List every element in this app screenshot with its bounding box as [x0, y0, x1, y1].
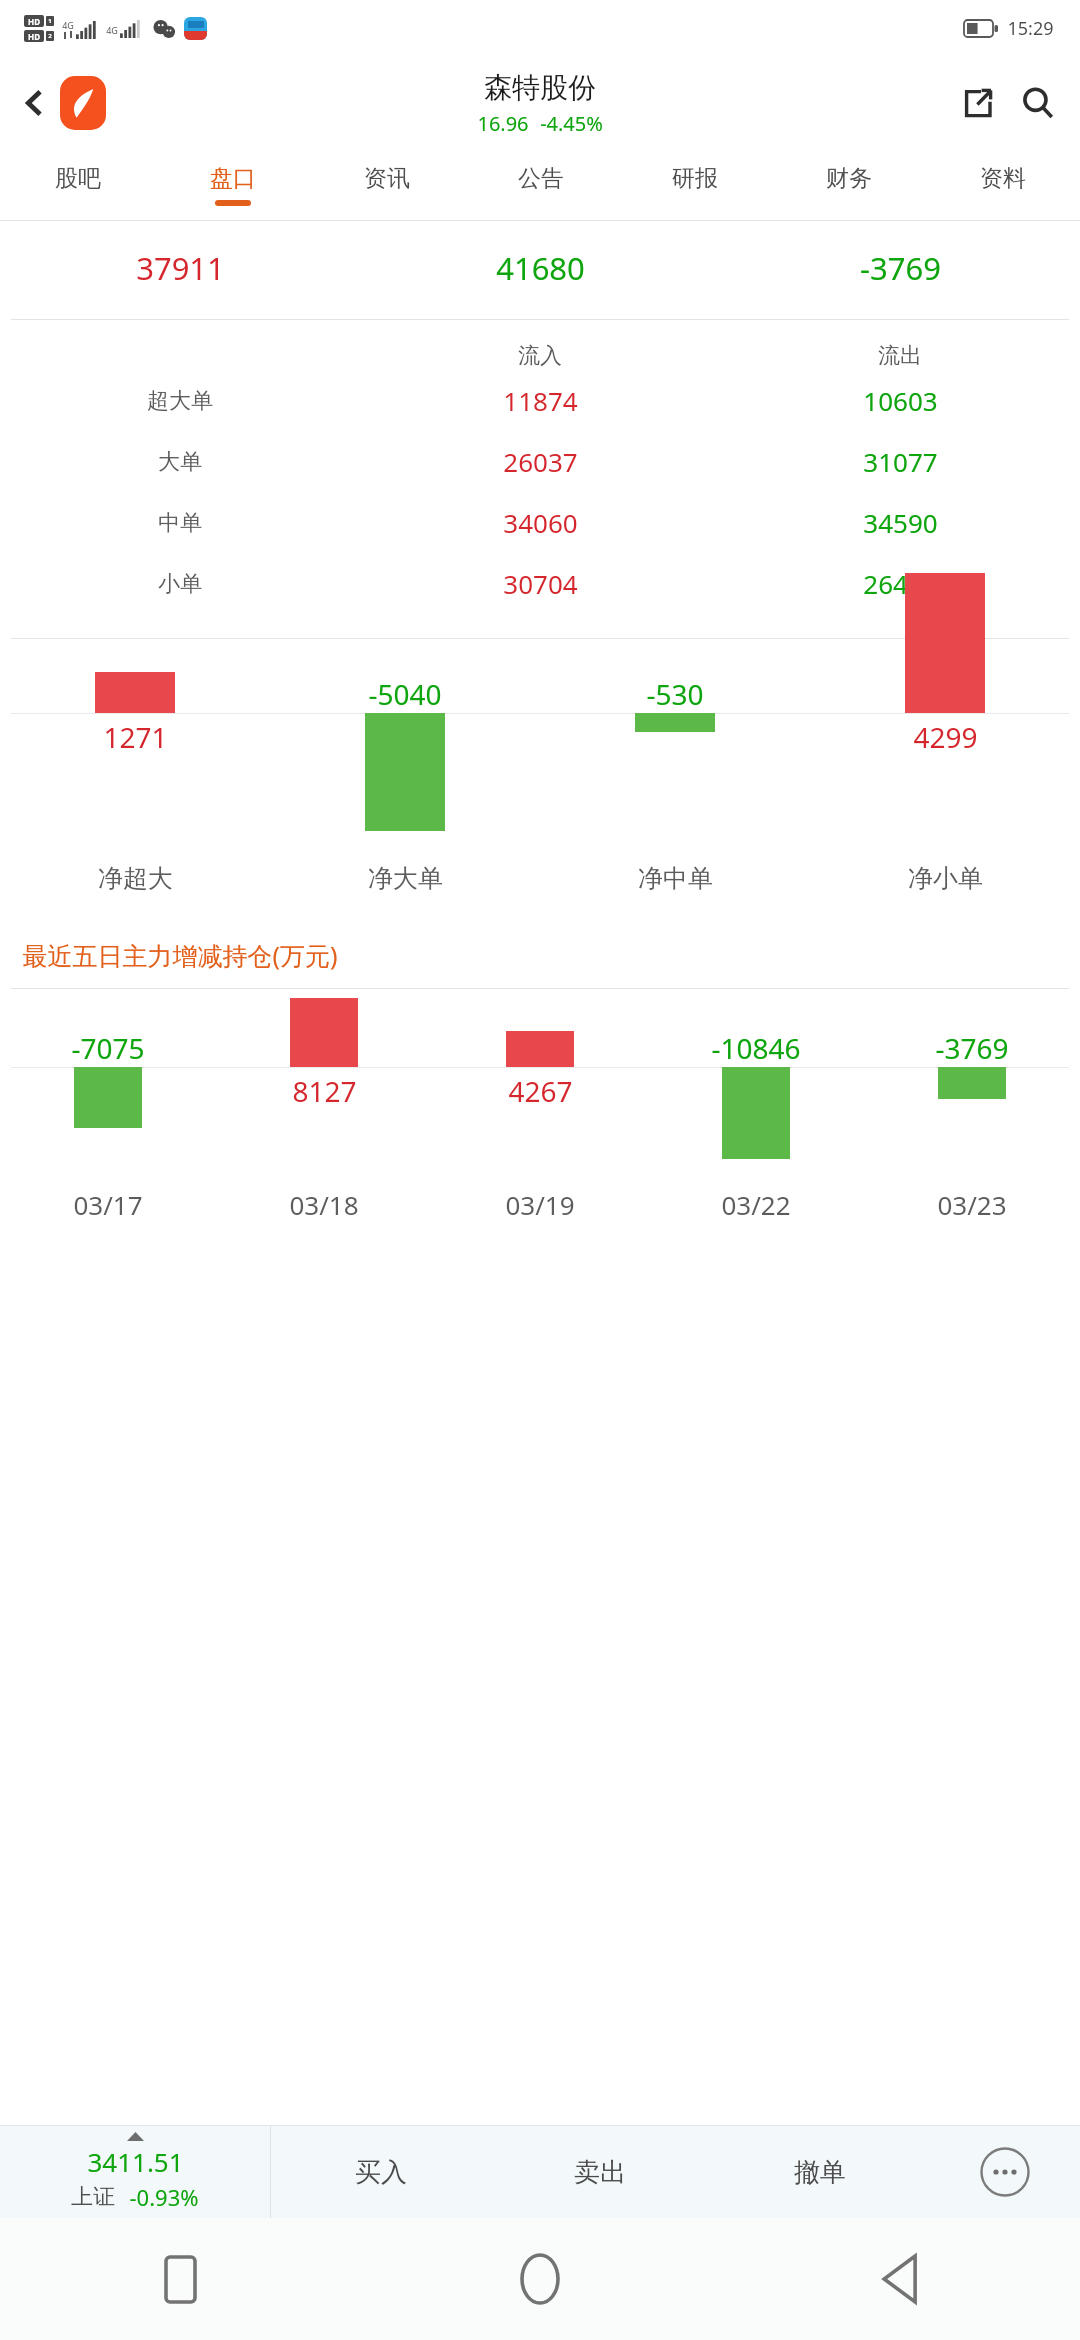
- staticText: 大单: [158, 448, 202, 476]
- staticText: HD: [28, 31, 40, 42]
- button[interactable]: App logo: [60, 76, 106, 130]
- button[interactable]: 3411.51: [0, 2126, 270, 2218]
- button[interactable]: 4267: [432, 1009, 648, 1171]
- button[interactable]: 中单: [0, 492, 1080, 553]
- staticText: 中单: [158, 509, 202, 537]
- staticText: 03/18: [289, 1187, 359, 1222]
- staticText: 净小单: [908, 863, 983, 894]
- staticText: 41680: [496, 247, 585, 289]
- button[interactable]: -7075: [0, 1009, 216, 1171]
- staticText: 34060: [503, 505, 578, 540]
- staticText: 34590: [863, 505, 938, 540]
- button[interactable]: -5040: [270, 653, 540, 841]
- staticText: 盘口: [210, 164, 256, 193]
- staticText: 股吧: [55, 164, 101, 193]
- button[interactable]: 4299: [810, 653, 1080, 841]
- button[interactable]: 8127: [216, 1009, 432, 1171]
- staticText: 4G: [62, 19, 74, 31]
- button[interactable]: 超大单: [0, 370, 1080, 431]
- staticText: 公告: [518, 164, 564, 193]
- staticText: 森特股份: [484, 70, 596, 105]
- staticText: 26037: [503, 444, 578, 479]
- staticText: HD: [28, 16, 40, 27]
- button[interactable]: 资料: [926, 150, 1080, 220]
- staticText: 撤单: [794, 2156, 846, 2189]
- button[interactable]: 研报: [618, 150, 772, 220]
- staticText: 小单: [158, 570, 202, 598]
- staticText: -4.45%: [540, 110, 603, 137]
- staticText: -3769: [935, 1029, 1009, 1067]
- button[interactable]: -530: [540, 653, 810, 841]
- button[interactable]: Back: [10, 72, 60, 134]
- staticText: 2: [48, 32, 52, 40]
- button[interactable]: Search: [1008, 73, 1068, 133]
- button[interactable]: More options: [930, 2126, 1080, 2218]
- staticText: 1271: [103, 718, 168, 756]
- staticText: 买入: [355, 2156, 407, 2189]
- staticText: 财务: [826, 164, 872, 193]
- staticText: 净中单: [638, 863, 713, 894]
- staticText: 31077: [863, 444, 938, 479]
- button[interactable]: 大单: [0, 431, 1080, 492]
- staticText: 4299: [913, 718, 978, 756]
- staticText: 最近五日主力增减持仓(万元): [22, 938, 338, 972]
- button[interactable]: Back: [720, 2218, 1080, 2340]
- staticText: 1: [48, 17, 52, 25]
- staticText: 资料: [980, 164, 1026, 193]
- staticText: 研报: [672, 164, 718, 193]
- button[interactable]: 股吧: [0, 150, 155, 220]
- staticText: 15:29: [1007, 16, 1054, 41]
- button[interactable]: 买入: [271, 2126, 490, 2218]
- staticText: 4G: [106, 24, 118, 36]
- staticText: 超大单: [147, 387, 213, 415]
- button[interactable]: 撤单: [710, 2126, 930, 2218]
- staticText: 3411.51: [87, 2144, 184, 2179]
- staticText: 8127: [292, 1072, 357, 1110]
- staticText: 37911: [136, 247, 225, 289]
- staticText: 卖出: [574, 2156, 626, 2189]
- button[interactable]: 小单: [0, 553, 1080, 614]
- staticText: -5040: [368, 675, 442, 713]
- button[interactable]: Home: [360, 2218, 720, 2340]
- staticText: 净超大: [98, 863, 173, 894]
- button[interactable]: 公告: [464, 150, 618, 220]
- staticText: 上证: [71, 2183, 115, 2211]
- staticText: -7075: [71, 1029, 145, 1067]
- staticText: 流入: [518, 342, 562, 370]
- button[interactable]: Recent apps: [0, 2218, 360, 2340]
- button[interactable]: 资讯: [310, 150, 464, 220]
- staticText: 净大单: [368, 863, 443, 894]
- staticText: 03/17: [73, 1187, 143, 1222]
- staticText: 26405: [863, 566, 938, 601]
- staticText: -10846: [711, 1029, 801, 1067]
- staticText: -0.93%: [129, 2182, 199, 2212]
- staticText: -3769: [860, 247, 941, 289]
- staticText: 03/22: [721, 1187, 791, 1222]
- button[interactable]: 卖出: [490, 2126, 710, 2218]
- staticText: 4267: [508, 1072, 573, 1110]
- staticText: 30704: [503, 566, 578, 601]
- button[interactable]: Share: [948, 73, 1008, 133]
- staticText: -530: [646, 675, 704, 713]
- button[interactable]: -3769: [864, 1009, 1080, 1171]
- staticText: 16.96: [477, 110, 529, 137]
- button[interactable]: 盘口: [155, 150, 310, 220]
- staticText: 03/23: [937, 1187, 1007, 1222]
- button[interactable]: 财务: [772, 150, 926, 220]
- staticText: 10603: [863, 383, 938, 418]
- button[interactable]: -10846: [648, 1009, 864, 1171]
- button[interactable]: 1271: [0, 653, 270, 841]
- staticText: 流出: [878, 342, 922, 370]
- staticText: 11874: [503, 383, 578, 418]
- staticText: 资讯: [364, 164, 410, 193]
- staticText: 03/19: [505, 1187, 575, 1222]
